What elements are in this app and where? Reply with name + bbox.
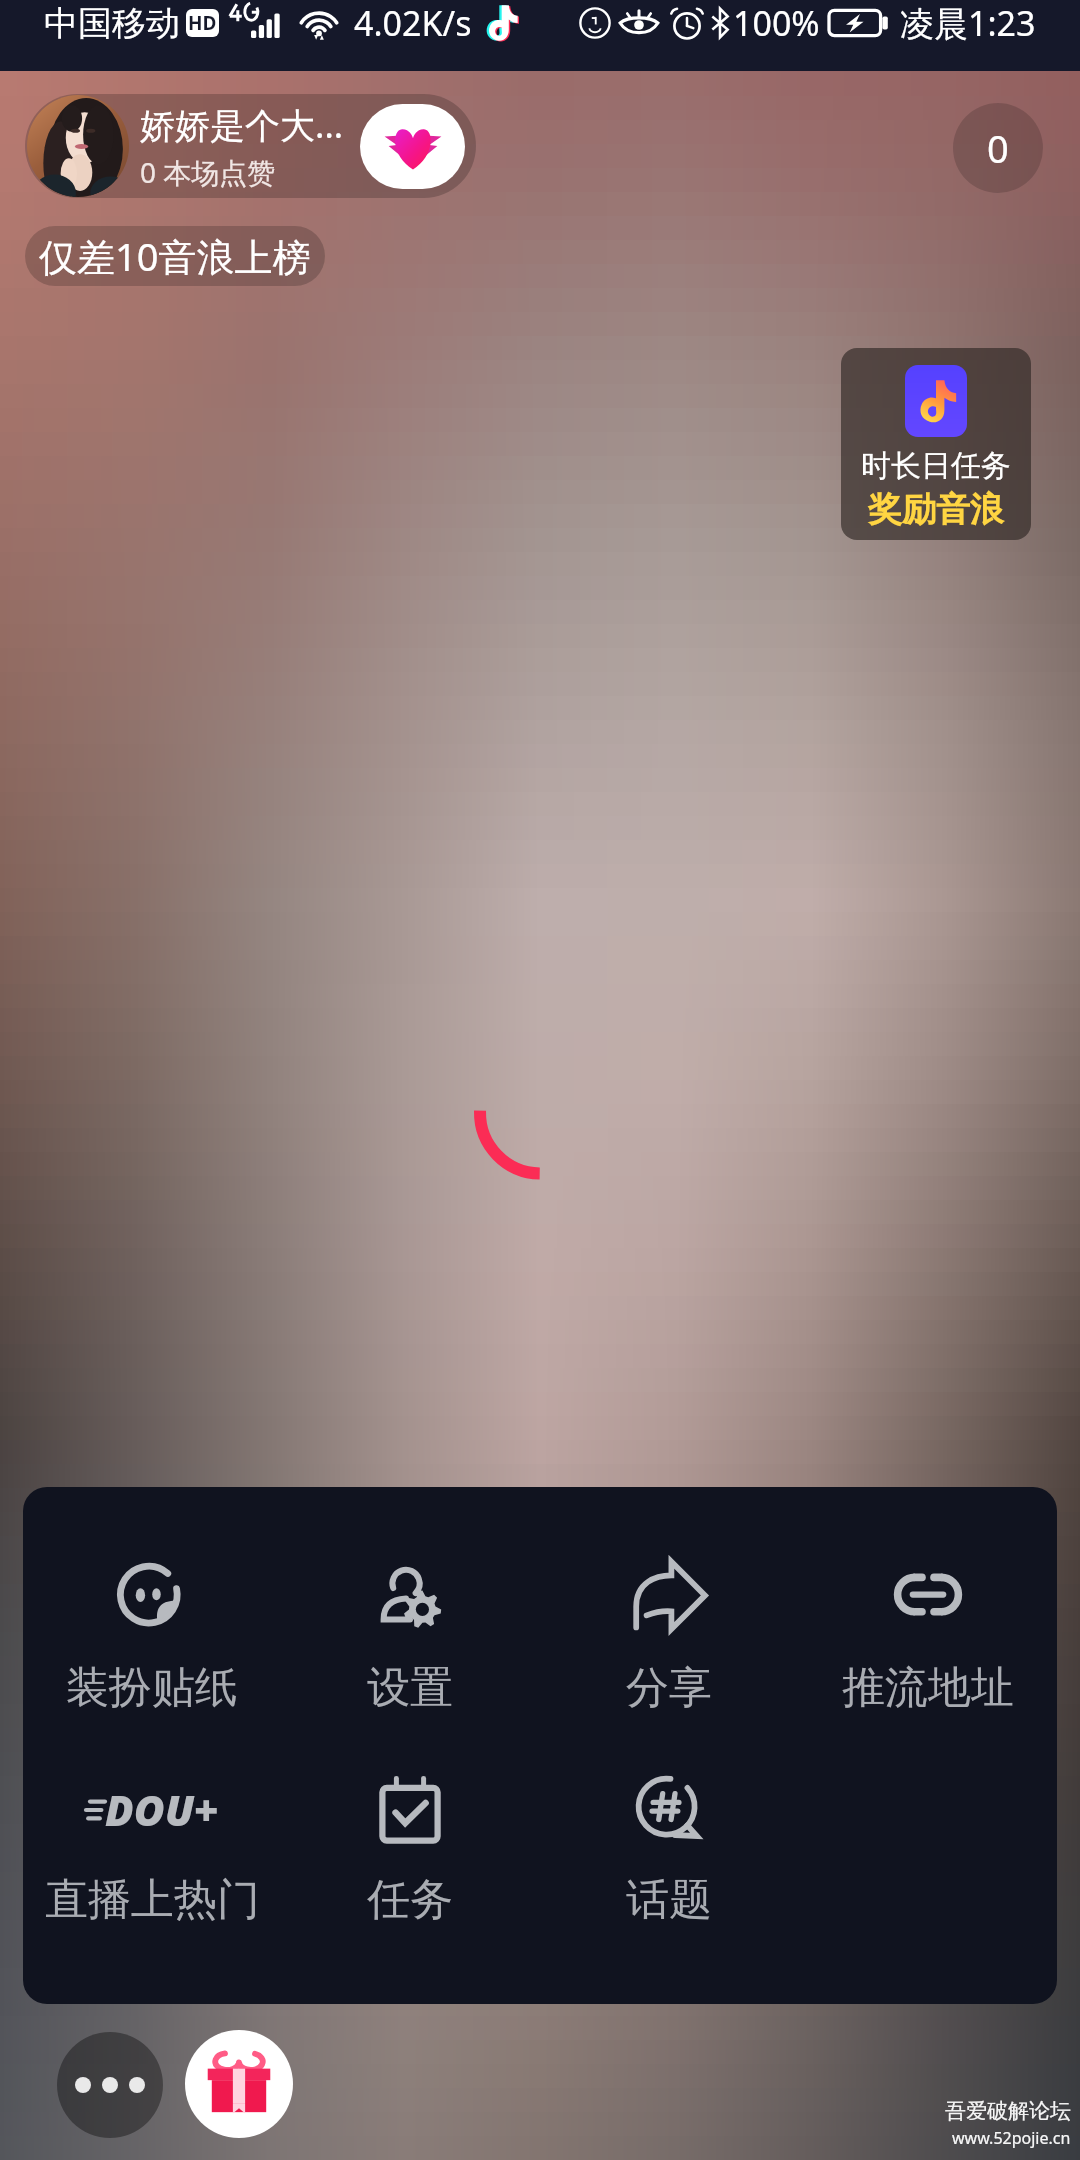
- button[interactable]: 任务: [281, 1769, 539, 1927]
- staticText: 中国移动: [44, 2, 180, 45]
- staticText: 娇娇是个大...: [140, 101, 344, 149]
- staticText: 推流地址: [842, 1661, 1014, 1715]
- button[interactable]: 设置: [281, 1557, 539, 1715]
- button[interactable]: 推流地址: [798, 1557, 1057, 1715]
- staticText: 奖励音浪: [868, 488, 1004, 531]
- button[interactable]: 话题: [539, 1769, 798, 1927]
- button[interactable]: Likes: [953, 103, 1043, 193]
- staticText: 话题: [626, 1873, 712, 1927]
- button[interactable]: DOU+: [23, 1769, 281, 1927]
- staticText: 4.02K/s: [354, 0, 472, 46]
- staticText: DOU+: [105, 1781, 219, 1838]
- button[interactable]: More: [57, 2032, 163, 2138]
- staticText: 凌晨1:23: [900, 0, 1036, 46]
- staticText: HD: [188, 10, 217, 36]
- button[interactable]: 装扮贴纸: [23, 1557, 281, 1715]
- staticText: 任务: [367, 1873, 453, 1927]
- staticText: www.52pojie.cn: [952, 2127, 1071, 2149]
- staticText: 装扮贴纸: [66, 1661, 238, 1715]
- staticText: 100%: [733, 0, 820, 46]
- staticText: 直播上热门: [45, 1873, 260, 1927]
- button[interactable]: 娇娇是个大...: [25, 94, 476, 198]
- button[interactable]: 时长日任务: [841, 348, 1031, 540]
- staticText: 设置: [367, 1661, 453, 1715]
- staticText: 时长日任务: [861, 447, 1011, 485]
- staticText: 仅差10音浪上榜: [39, 230, 311, 282]
- button[interactable]: 仅差10音浪上榜: [25, 226, 325, 286]
- staticText: 0 本场点赞: [140, 153, 276, 191]
- staticText: 0: [987, 122, 1009, 174]
- staticText: 吾爱破解论坛: [945, 2098, 1071, 2124]
- button[interactable]: 分享: [539, 1557, 798, 1715]
- button[interactable]: Follow: [360, 104, 465, 189]
- button[interactable]: Gift: [185, 2030, 293, 2138]
- staticText: 分享: [626, 1661, 712, 1715]
